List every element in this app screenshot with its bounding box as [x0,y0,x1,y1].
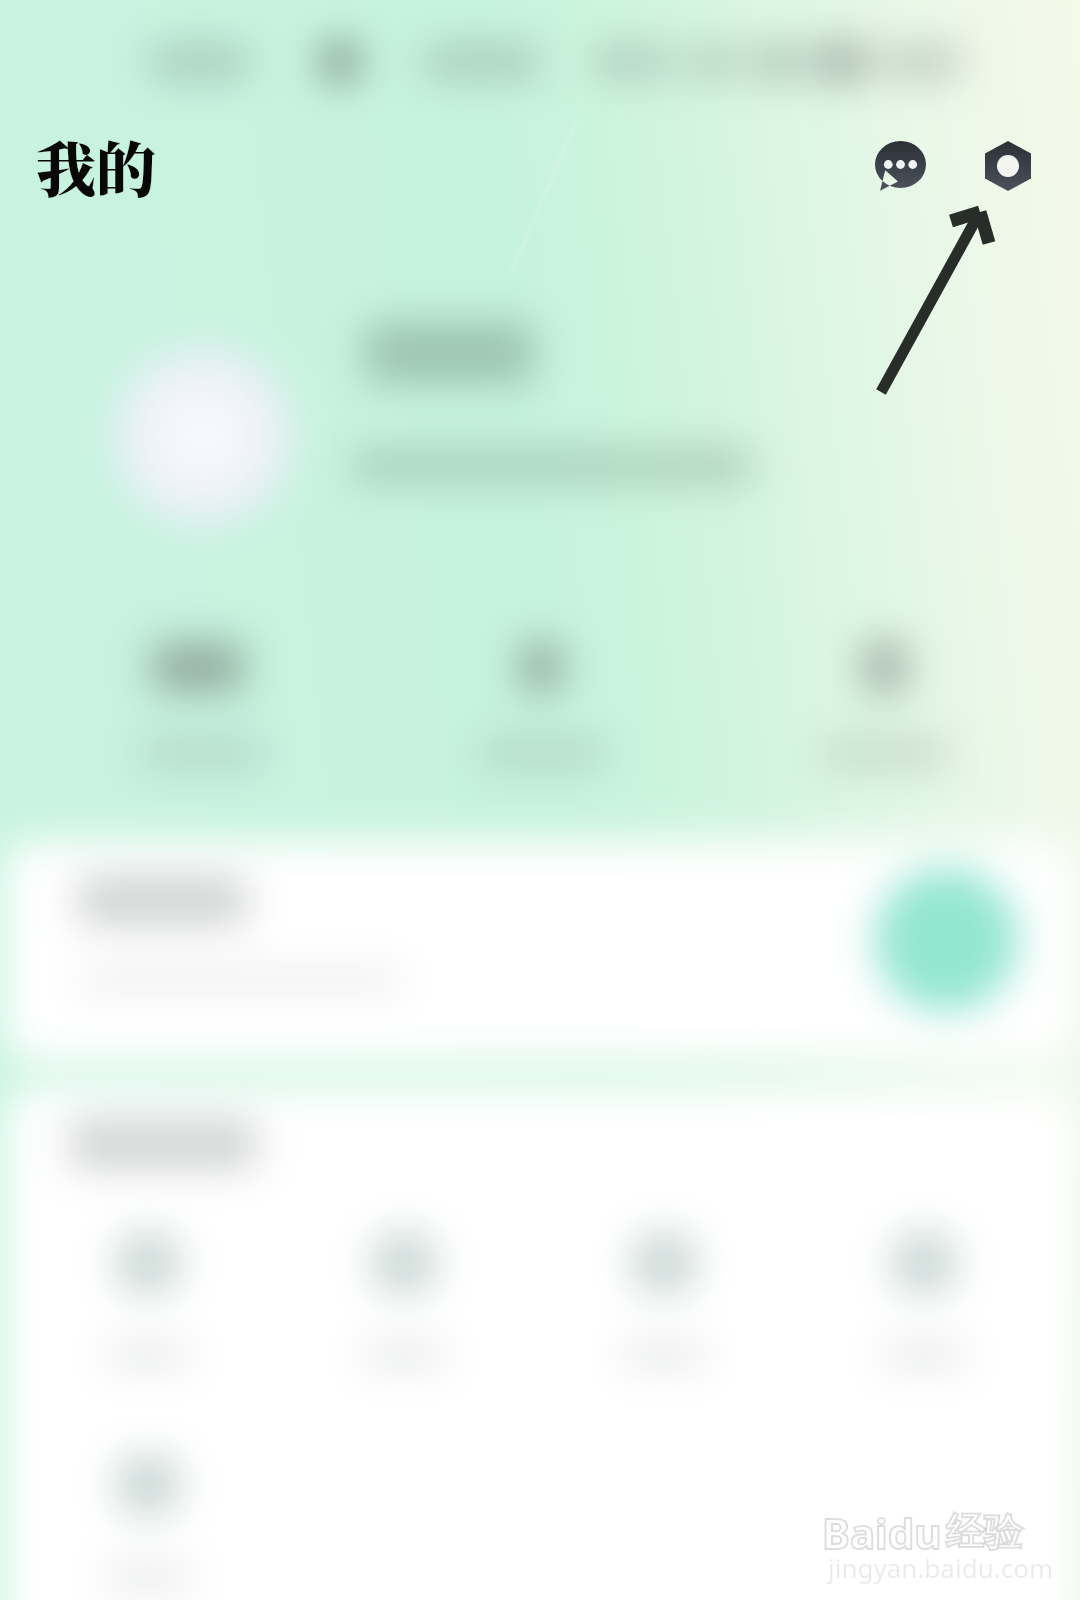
button[interactable]: Settings [971,127,1069,205]
staticText: Baidu [822,1504,942,1561]
staticText: 我的 [36,123,156,209]
staticText: 经验 [946,1508,1022,1556]
staticText: jingyan.baidu.com [828,1550,1054,1585]
button[interactable]: Messages [861,127,941,205]
